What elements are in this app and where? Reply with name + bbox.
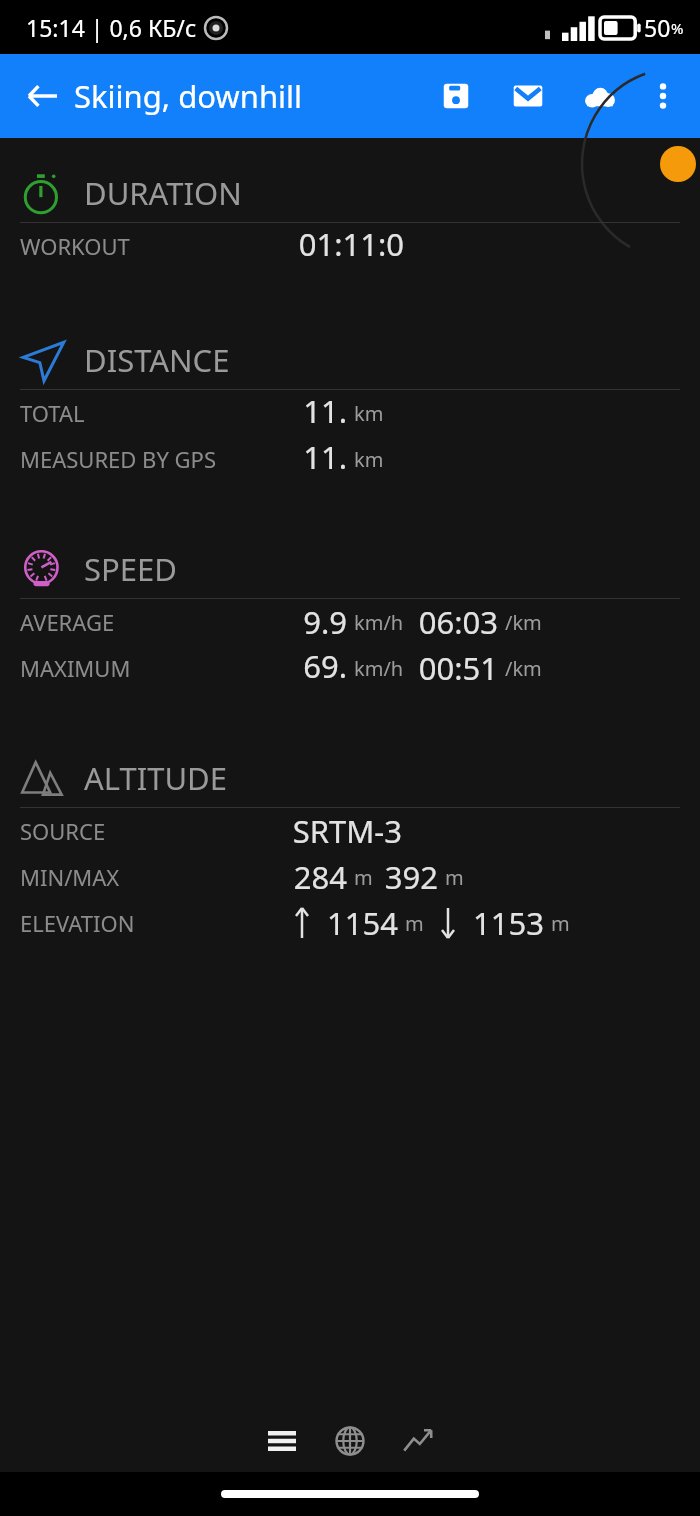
staticText: /km [505, 655, 542, 682]
button[interactable]: Map [323, 1414, 377, 1468]
button[interactable]: More options [636, 69, 690, 123]
staticText: m [551, 910, 570, 937]
button[interactable]: Back [14, 68, 70, 124]
staticText: 9.9 [303, 601, 347, 643]
staticText: % [671, 18, 684, 38]
button[interactable]: Email [500, 68, 556, 124]
staticText: 15:14 | 0,6 КБ/с [26, 12, 197, 43]
staticText: 01:11:03 [292, 223, 404, 269]
staticText: km [354, 400, 384, 427]
staticText: 50 [644, 12, 671, 43]
staticText: DURATION [84, 172, 242, 214]
staticText: Skiing, downhill [74, 75, 303, 117]
button[interactable]: List [255, 1414, 309, 1468]
staticText: ALTITUDE [84, 757, 227, 799]
staticText: MEASURED BY GPS [20, 444, 216, 474]
staticText: MIN/MAX [20, 862, 120, 892]
staticText: 11.74 [292, 436, 347, 482]
staticText: TOTAL [20, 398, 85, 428]
staticText: ELEVATION [20, 908, 135, 938]
staticText: AVERAGE [20, 607, 115, 637]
button[interactable]: Charts [391, 1414, 445, 1468]
staticText: m [405, 910, 424, 937]
staticText: km [354, 446, 384, 473]
staticText: 392 [384, 856, 438, 898]
staticText: m [445, 864, 464, 891]
staticText: km/h [354, 609, 404, 636]
staticText: 1154 [327, 902, 398, 944]
staticText: 00:51 [418, 647, 498, 689]
staticText: SRTM-3 [292, 810, 402, 852]
staticText: /km [505, 609, 542, 636]
staticText: m [354, 864, 373, 891]
staticText: 11.74 [292, 390, 347, 436]
staticText: 284 [293, 856, 347, 898]
staticText: MAXIMUM [20, 653, 131, 683]
staticText: km/h [354, 655, 404, 682]
staticText: 69.5 [292, 645, 347, 691]
staticText: SPEED [84, 548, 177, 590]
staticText: WORKOUT [20, 231, 130, 261]
staticText: SOURCE [20, 816, 106, 846]
button[interactable]: Save [428, 68, 484, 124]
staticText: 06:03 [418, 601, 498, 643]
staticText: DISTANCE [84, 339, 230, 381]
staticText: 1153 [473, 902, 544, 944]
button[interactable]: Upload [572, 68, 628, 124]
